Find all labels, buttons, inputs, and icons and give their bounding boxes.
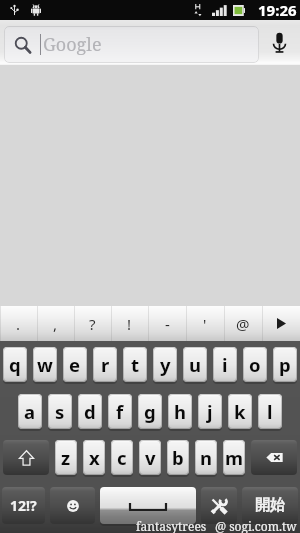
staticText: ! (127, 314, 132, 334)
button[interactable]: r (93, 347, 117, 382)
button[interactable]: More symbols (262, 306, 300, 341)
button[interactable]: 12!? (2, 487, 45, 524)
button[interactable]: , (37, 306, 74, 341)
button[interactable]: k (228, 394, 252, 429)
staticText: p (279, 352, 291, 377)
button[interactable]: q (3, 347, 27, 382)
button[interactable]: g (138, 394, 162, 429)
staticText: 12!? (10, 496, 37, 515)
button[interactable]: j (198, 394, 222, 429)
staticText: u (189, 352, 202, 377)
staticText: . (16, 314, 21, 334)
staticText: f (116, 399, 124, 424)
staticText: ? (89, 314, 96, 334)
button[interactable]: x (83, 440, 105, 475)
button[interactable]: f (108, 394, 132, 429)
button[interactable]: @ (224, 306, 262, 341)
button[interactable]: Google (4, 26, 259, 63)
staticText: q (9, 352, 21, 377)
staticText: ' (203, 314, 207, 334)
staticText: v (145, 445, 156, 470)
staticText: d (84, 399, 96, 424)
button[interactable]: y (153, 347, 177, 382)
staticText: g (144, 399, 156, 424)
staticText: @ (236, 314, 250, 334)
staticText: y (160, 352, 171, 377)
button[interactable]: n (195, 440, 217, 475)
button[interactable]: z (55, 440, 77, 475)
staticText: i (222, 352, 228, 377)
staticText: @ sogi.com.tw (215, 518, 297, 533)
button[interactable]: u (183, 347, 207, 382)
button[interactable]: b (167, 440, 189, 475)
button[interactable]: p (273, 347, 297, 382)
button[interactable]: s (48, 394, 72, 429)
button[interactable]: Shift (3, 440, 49, 475)
button[interactable]: ? (74, 306, 111, 341)
staticText: b (172, 445, 184, 470)
staticText: z (61, 445, 71, 470)
staticText: l (267, 399, 273, 424)
button[interactable]: ! (111, 306, 148, 341)
staticText: k (234, 399, 246, 424)
staticText: e (69, 352, 81, 377)
button[interactable]: Settings (201, 487, 237, 524)
staticText: a (24, 399, 36, 424)
button[interactable]: a (18, 394, 42, 429)
staticText: m (225, 445, 244, 470)
button[interactable]: h (168, 394, 192, 429)
staticText: fantasytrees (136, 518, 207, 533)
button[interactable]: Voice search (259, 20, 300, 65)
staticText: h (174, 399, 187, 424)
button[interactable]: Space (100, 487, 196, 524)
staticText: 19:26 (258, 0, 297, 20)
button[interactable]: t (123, 347, 147, 382)
staticText: w (37, 352, 53, 377)
staticText: 開始 (255, 496, 285, 515)
staticText: x (89, 445, 100, 470)
button[interactable]: v (139, 440, 161, 475)
staticText: Google (43, 32, 102, 57)
staticText: o (249, 352, 261, 377)
button[interactable]: m (223, 440, 245, 475)
staticText: r (101, 352, 110, 377)
staticText: t (131, 352, 140, 377)
button[interactable]: d (78, 394, 102, 429)
button[interactable]: . (0, 306, 37, 341)
staticText: - (165, 314, 170, 334)
button[interactable]: 開始 (242, 487, 298, 524)
button[interactable]: o (243, 347, 267, 382)
button[interactable]: Backspace (251, 440, 297, 475)
button[interactable]: i (213, 347, 237, 382)
staticText: c (117, 445, 127, 470)
button[interactable]: - (148, 306, 186, 341)
button[interactable]: e (63, 347, 87, 382)
staticText: , (53, 314, 58, 334)
staticText: s (55, 399, 65, 424)
button[interactable]: Emoji (50, 487, 95, 524)
button[interactable]: w (33, 347, 57, 382)
staticText: n (200, 445, 213, 470)
button[interactable]: c (111, 440, 133, 475)
button[interactable]: ' (186, 306, 224, 341)
staticText: j (207, 399, 213, 424)
button[interactable]: l (258, 394, 282, 429)
